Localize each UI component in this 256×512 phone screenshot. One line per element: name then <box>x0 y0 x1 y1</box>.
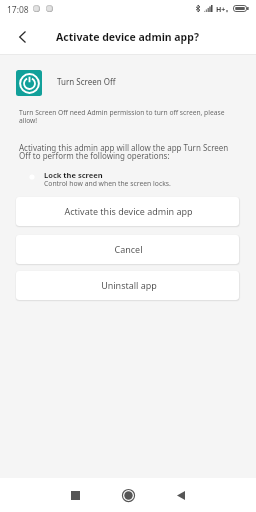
button[interactable]: Activate this device admin app <box>16 197 239 226</box>
staticText: Activate device admin app? <box>56 30 199 44</box>
staticText: Cancel <box>114 243 143 255</box>
staticText: Lock the screen <box>44 170 103 180</box>
button[interactable]: Back <box>166 480 196 510</box>
button[interactable]: Back <box>11 26 33 48</box>
staticText: 17:08 <box>7 4 29 16</box>
button[interactable]: Uninstall app <box>16 271 239 300</box>
button[interactable]: Recents <box>60 480 90 510</box>
staticText: Activate this device admin app <box>64 205 193 217</box>
staticText: Uninstall app <box>101 279 157 291</box>
staticText: H+ <box>216 5 226 15</box>
button[interactable]: Cancel <box>16 235 239 264</box>
staticText: Control how and when the screen locks. <box>44 179 171 188</box>
button[interactable]: Home <box>113 480 143 510</box>
staticText: Turn Screen Off need Admin permission to… <box>19 108 232 125</box>
staticText: Activating this admin app will allow the… <box>19 142 232 161</box>
staticText: Turn Screen Off <box>57 76 116 87</box>
